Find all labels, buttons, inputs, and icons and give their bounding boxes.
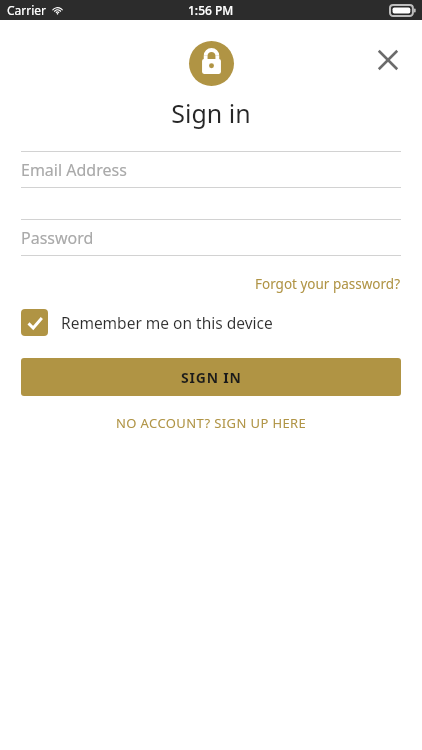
button[interactable]: Close bbox=[364, 36, 412, 84]
button[interactable]: NO ACCOUNT? SIGN UP HERE bbox=[110, 410, 313, 436]
staticText: Forgot your password? bbox=[255, 275, 401, 293]
button[interactable]: Email Address bbox=[21, 152, 401, 187]
staticText: NO ACCOUNT? SIGN UP HERE bbox=[116, 414, 307, 432]
staticText: SIGN IN bbox=[181, 368, 242, 387]
button[interactable]: SIGN IN bbox=[21, 358, 401, 396]
staticText: Carrier bbox=[7, 2, 47, 18]
staticText: Email Address bbox=[21, 159, 127, 181]
button[interactable]: Remember me on this device bbox=[21, 309, 401, 336]
button[interactable]: Forgot your password? bbox=[255, 273, 401, 295]
staticText: Sign in bbox=[171, 96, 251, 130]
staticText: Password bbox=[21, 227, 94, 249]
staticText: Remember me on this device bbox=[61, 312, 273, 333]
button[interactable]: Password bbox=[21, 220, 401, 255]
staticText: 1:56 PM bbox=[188, 2, 234, 18]
